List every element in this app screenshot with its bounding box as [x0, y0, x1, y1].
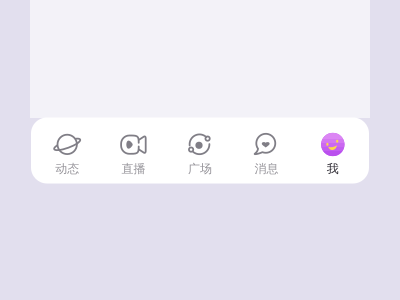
staticText: 我 [327, 161, 339, 176]
button[interactable]: 广场 [167, 117, 233, 183]
button[interactable]: 动态 [34, 117, 100, 183]
button[interactable]: 直播 [100, 117, 167, 183]
staticText: 广场 [188, 161, 212, 176]
staticText: 直播 [122, 161, 146, 176]
staticText: 动态 [55, 161, 79, 176]
button[interactable]: 消息 [233, 117, 300, 183]
staticText: 消息 [254, 161, 278, 176]
button[interactable]: 我 [300, 117, 366, 183]
